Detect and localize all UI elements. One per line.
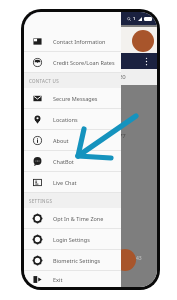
staticText: 43	[136, 255, 142, 262]
staticText: Login Settings	[53, 236, 90, 243]
staticText: Exit	[53, 276, 63, 283]
button[interactable]: Exit	[24, 271, 121, 287]
button[interactable]: Login Settings	[24, 229, 121, 249]
staticText: 141.20	[107, 73, 126, 81]
staticText: Biometric Settings	[53, 257, 101, 264]
staticText: CONTACT US	[29, 78, 59, 84]
button[interactable]: Opt In & Time Zone	[24, 208, 121, 228]
staticText: Secure Messages	[53, 95, 98, 102]
staticText: About	[53, 137, 69, 144]
button[interactable]: Live Chat	[24, 172, 121, 192]
button[interactable]: Secure Messages	[24, 88, 121, 108]
staticText: Live Chat	[53, 179, 77, 186]
staticText: Contact Information	[53, 38, 106, 45]
button[interactable]: Credit Score/Loan Rates	[24, 52, 121, 72]
staticText: Opt In & Time Zone	[53, 215, 104, 222]
staticText: 2	[107, 153, 112, 163]
staticText: Credit Score/Loan Rates	[53, 59, 115, 66]
staticText: Locations	[53, 116, 78, 123]
button[interactable]: About	[24, 130, 121, 150]
staticText: SETTINGS	[29, 198, 53, 204]
staticText: 407.77	[107, 132, 126, 140]
staticText: ChatBot	[53, 158, 74, 165]
button[interactable]: Biometric Settings	[24, 250, 121, 270]
button[interactable]: Contact Information	[24, 31, 121, 51]
staticText: 11:25	[30, 15, 45, 22]
button[interactable]: Locations	[24, 109, 121, 129]
staticText: 1	[133, 16, 136, 21]
button[interactable]: ChatBot	[24, 151, 121, 171]
